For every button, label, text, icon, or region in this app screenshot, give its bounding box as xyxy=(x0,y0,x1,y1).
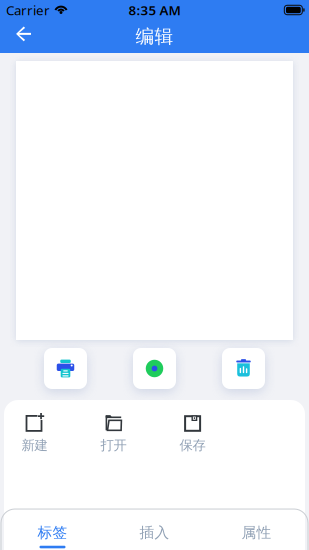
button[interactable]: Print xyxy=(44,348,87,389)
button[interactable]: 保存 xyxy=(172,413,213,453)
button[interactable]: 打开 xyxy=(93,413,134,453)
staticText: 插入 xyxy=(139,524,169,542)
button[interactable]: Record xyxy=(133,348,176,389)
staticText: 新建 xyxy=(21,437,47,453)
staticText: 编辑 xyxy=(135,25,173,48)
button[interactable]: 标签 xyxy=(1,514,103,550)
staticText: Carrier xyxy=(6,1,50,19)
staticText: 属性 xyxy=(241,524,271,542)
button[interactable]: Delete xyxy=(222,348,265,389)
button[interactable]: 属性 xyxy=(205,514,307,550)
staticText: 打开 xyxy=(100,437,126,453)
staticText: 标签 xyxy=(37,524,67,542)
staticText: 保存 xyxy=(179,437,205,453)
button[interactable]: 新建 xyxy=(14,413,55,453)
button[interactable]: 插入 xyxy=(103,514,205,550)
button[interactable]: Back xyxy=(0,29,31,44)
staticText: 8:35 AM xyxy=(128,1,180,19)
